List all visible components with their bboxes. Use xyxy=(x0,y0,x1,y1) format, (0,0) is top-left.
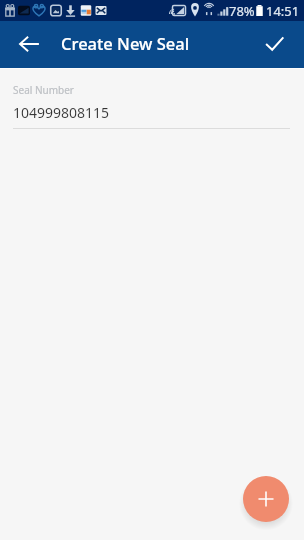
staticText: 14:51 xyxy=(266,2,300,20)
button[interactable]: Save xyxy=(256,26,292,62)
staticText: 104999808115 xyxy=(13,103,110,122)
staticText: 78% xyxy=(229,2,255,20)
button[interactable]: Add xyxy=(243,476,289,522)
staticText: Seal Number xyxy=(13,83,74,97)
staticText: Create New Seal xyxy=(61,32,190,54)
button[interactable]: Back xyxy=(11,26,47,62)
